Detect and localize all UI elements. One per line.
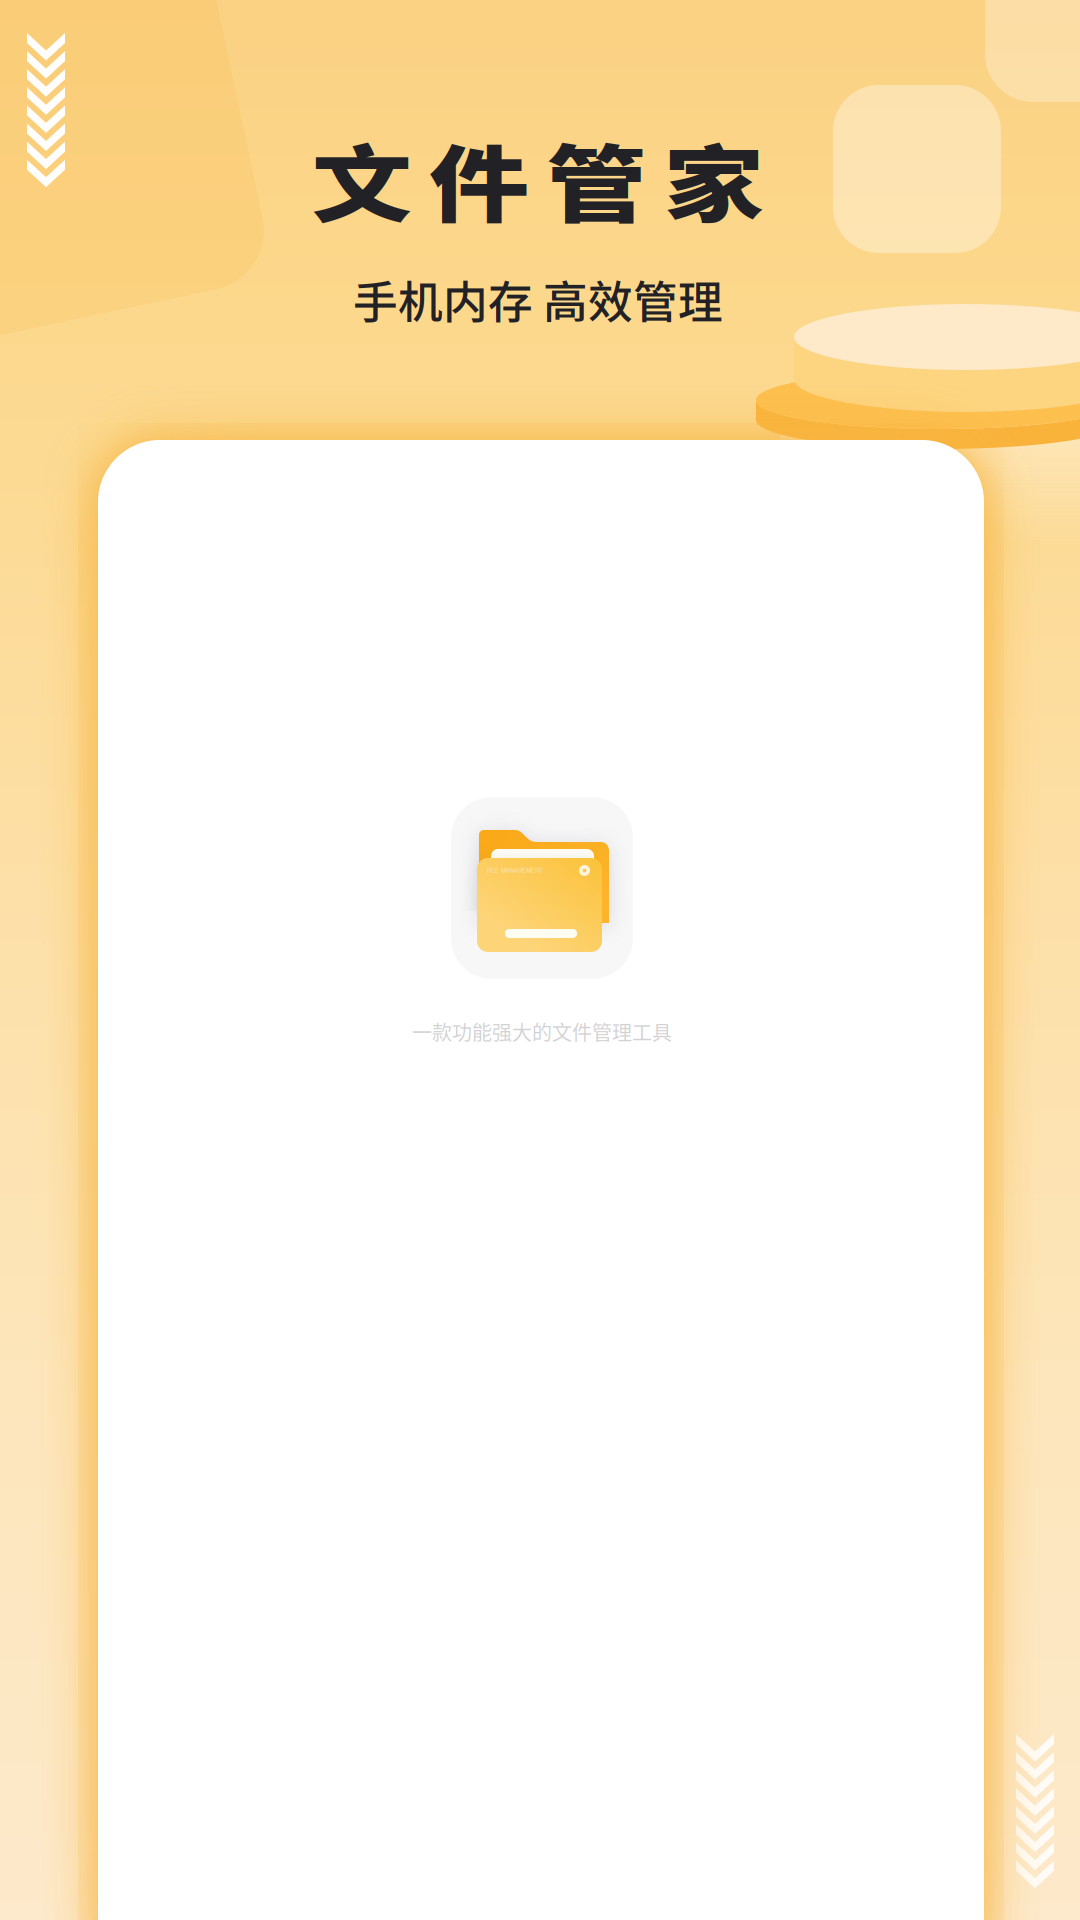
staticText: 手机内存 高效管理 (353, 267, 723, 331)
staticText: 文件管家 (351, 119, 725, 239)
staticText: 一款功能强大的文件管理工具 (412, 1017, 672, 1046)
staticText: FILE MANAGEMENT (487, 867, 543, 874)
button[interactable]: 文件管家 一款功能强大的文件管理工具 (2, 797, 1080, 1046)
